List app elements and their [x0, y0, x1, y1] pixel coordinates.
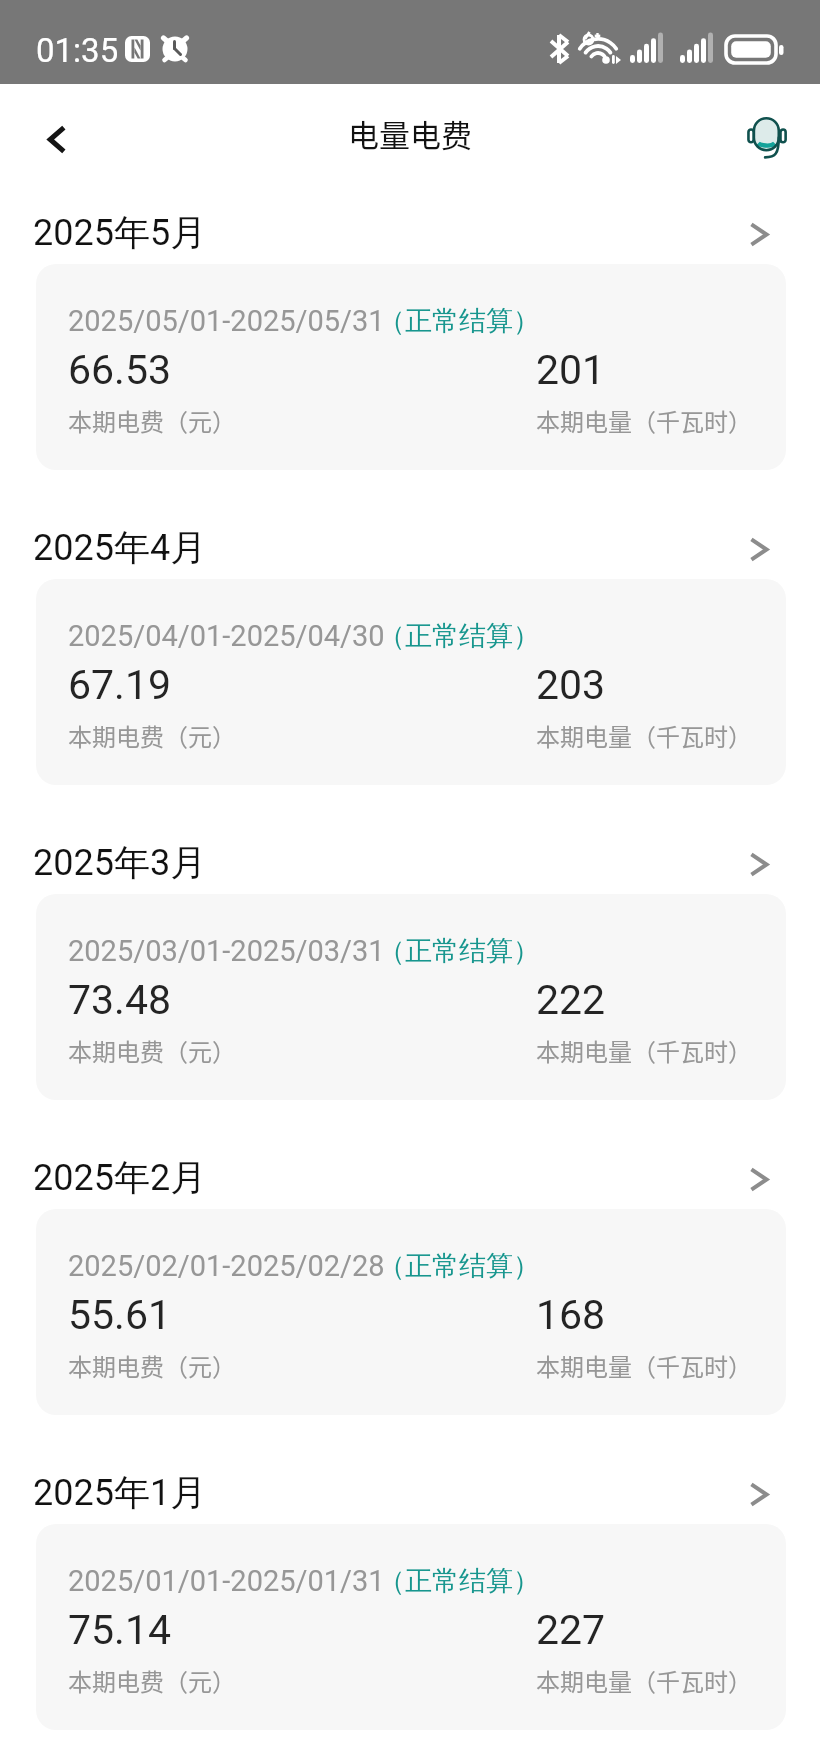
button[interactable]: 2025年4月 — [0, 509, 820, 579]
staticText: 2025/01/01-2025/01/31 — [68, 1564, 385, 1598]
button[interactable]: 2025/04/01-2025/04/30 — [36, 579, 786, 785]
button[interactable]: 2025/05/01-2025/05/31 — [36, 264, 786, 470]
staticText: 电量电费 — [348, 111, 472, 156]
staticText: 本期电量（千瓦时） — [536, 1663, 752, 1698]
button[interactable]: Back — [23, 105, 91, 173]
staticText: 168 — [536, 1291, 606, 1339]
staticText: 2025年2月 — [33, 1155, 207, 1200]
staticText: 2025/03/01-2025/03/31 — [68, 934, 385, 968]
staticText: 2025/04/01-2025/04/30 — [68, 619, 385, 653]
staticText: 66.53 — [68, 346, 171, 394]
staticText: 203 — [536, 661, 606, 709]
staticText: （正常结算） — [378, 619, 540, 653]
staticText: 本期电量（千瓦时） — [536, 1348, 752, 1383]
button[interactable]: 2025/02/01-2025/02/28 — [36, 1209, 786, 1415]
staticText: 2025年5月 — [33, 210, 207, 255]
staticText: 2025年3月 — [33, 840, 207, 885]
button[interactable]: 2025年1月 — [0, 1454, 820, 1524]
staticText: 222 — [536, 976, 606, 1024]
button[interactable]: 2025年3月 — [0, 824, 820, 894]
staticText: 本期电费（元） — [68, 1663, 236, 1698]
staticText: （正常结算） — [378, 304, 540, 338]
staticText: 2025/05/01-2025/05/31 — [68, 304, 385, 338]
staticText: 本期电费（元） — [68, 403, 236, 438]
staticText: 01:35 — [36, 31, 119, 70]
staticText: 本期电量（千瓦时） — [536, 718, 752, 753]
staticText: 本期电量（千瓦时） — [536, 1033, 752, 1068]
staticText: 73.48 — [68, 976, 171, 1024]
staticText: 本期电费（元） — [68, 1348, 236, 1383]
button[interactable]: 2025年5月 — [0, 194, 820, 264]
staticText: 2025年1月 — [33, 1470, 207, 1515]
staticText: 本期电量（千瓦时） — [536, 403, 752, 438]
staticText: 75.14 — [68, 1606, 171, 1654]
staticText: （正常结算） — [378, 934, 540, 968]
button[interactable]: 2025/01/01-2025/01/31 — [36, 1524, 786, 1730]
staticText: （正常结算） — [378, 1564, 540, 1598]
staticText: 本期电费（元） — [68, 718, 236, 753]
staticText: 本期电费（元） — [68, 1033, 236, 1068]
staticText: 2025年4月 — [33, 525, 207, 570]
button[interactable]: Customer service — [735, 107, 799, 171]
staticText: 227 — [536, 1606, 606, 1654]
staticText: （正常结算） — [378, 1249, 540, 1283]
staticText: 55.61 — [68, 1291, 171, 1339]
staticText: 67.19 — [68, 661, 171, 709]
staticText: 2025/02/01-2025/02/28 — [68, 1249, 385, 1283]
button[interactable]: 2025年2月 — [0, 1139, 820, 1209]
button[interactable]: 2025/03/01-2025/03/31 — [36, 894, 786, 1100]
staticText: 201 — [536, 346, 606, 394]
